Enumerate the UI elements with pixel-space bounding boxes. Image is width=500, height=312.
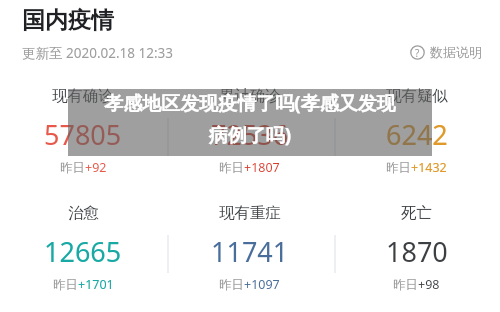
staticText: 累计确诊 — [219, 86, 281, 106]
staticText: 现有重症 — [219, 203, 281, 223]
staticText: 11741 — [211, 233, 289, 270]
staticText: ? — [415, 46, 420, 60]
staticText: 国内疫情 — [22, 6, 114, 35]
button[interactable]: 死亡 — [333, 195, 500, 312]
button[interactable]: Data explanation — [406, 42, 486, 62]
staticText: 现有疑似 — [386, 86, 448, 106]
staticText: 病例了吗) — [68, 122, 432, 148]
button[interactable]: 累计确诊 — [166, 78, 333, 195]
staticText: 57805 — [44, 116, 122, 153]
staticText: 死亡 — [401, 203, 432, 223]
button[interactable]: 现有疑似 — [333, 78, 500, 195]
staticText: 数据说明 — [430, 44, 482, 60]
other: Data explanation — [410, 45, 425, 60]
staticText: 昨日+1701 — [53, 276, 114, 293]
button[interactable]: 孝感地区发现疫情了吗(孝感又发现 — [68, 89, 432, 156]
button[interactable]: 现有重症 — [166, 195, 333, 312]
staticText: 昨日+92 — [60, 159, 107, 176]
staticText: 昨日+1097 — [219, 276, 280, 293]
staticText: 12665 — [44, 233, 122, 270]
staticText: 昨日+1807 — [219, 159, 280, 176]
staticText: 孝感地区发现疫情了吗(孝感又发现 — [68, 90, 432, 116]
staticText: 6242 — [386, 116, 448, 153]
staticText: 72536 — [211, 116, 289, 153]
staticText: 现有确诊 — [52, 86, 114, 106]
staticText: 昨日+1432 — [386, 159, 447, 176]
staticText: 昨日+98 — [393, 276, 440, 293]
staticText: 治愈 — [68, 203, 99, 223]
staticText: 1870 — [386, 233, 448, 270]
button[interactable]: 现有确诊 — [0, 78, 166, 195]
staticText: 更新至 2020.02.18 12:33 — [22, 44, 174, 62]
button[interactable]: 治愈 — [0, 195, 166, 312]
